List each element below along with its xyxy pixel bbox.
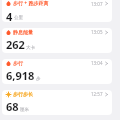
other: Step length [6, 92, 11, 97]
staticText: 12:57 [91, 91, 103, 97]
staticText: 68 [6, 99, 19, 114]
other: Activity [6, 1, 11, 6]
button[interactable]: Activity [2, 59, 112, 84]
staticText: 步 [36, 76, 41, 82]
staticText: 13:04 [91, 60, 103, 66]
staticText: 大卡 [26, 45, 35, 51]
staticText: 公里 [14, 15, 23, 21]
staticText: 13:07 [91, 1, 103, 7]
button[interactable]: Activity [2, 0, 112, 22]
staticText: 6,918 [6, 68, 35, 83]
staticText: 步行 [13, 60, 23, 66]
button[interactable]: Activity [2, 28, 112, 53]
staticText: 4 [6, 9, 13, 22]
staticText: 步行 + 跑步距离 [13, 0, 49, 7]
other: Activity [6, 61, 11, 66]
staticText: 静息能量 [13, 29, 33, 35]
staticText: 厘米 [20, 107, 29, 113]
staticText: 13:05 [91, 29, 103, 35]
staticText: 步行步长 [13, 91, 33, 97]
button[interactable]: Step length [2, 90, 112, 115]
other: Activity [6, 30, 11, 35]
staticText: 262 [6, 37, 25, 52]
